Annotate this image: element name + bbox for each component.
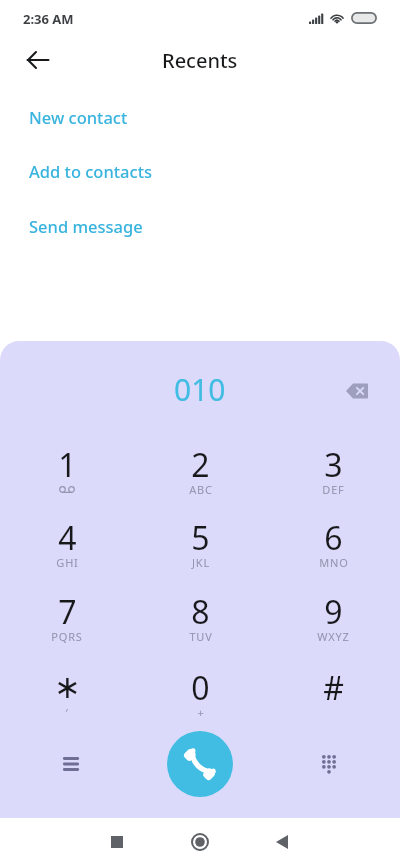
staticText: PQRS <box>51 629 83 644</box>
button[interactable]: 4 <box>0 503 134 577</box>
button[interactable]: Call <box>167 731 233 797</box>
staticText: 5 <box>191 516 210 560</box>
button[interactable]: 9 <box>267 577 400 651</box>
staticText: Send message <box>29 215 143 237</box>
staticText: 010 <box>174 369 226 410</box>
button[interactable]: Recents <box>97 822 137 862</box>
staticText: 3 <box>324 443 343 487</box>
button[interactable]: ∗ <box>0 653 134 727</box>
button[interactable]: 2 <box>134 430 267 504</box>
staticText: 2 <box>191 443 210 487</box>
button[interactable]: 7 <box>0 577 134 651</box>
staticText: 9 <box>324 590 343 634</box>
staticText: JKL <box>192 555 210 570</box>
staticText: 4 <box>58 516 77 560</box>
staticText: 7 <box>58 590 77 634</box>
button[interactable]: Add to contacts <box>0 144 400 198</box>
staticText: # <box>323 666 344 710</box>
button[interactable]: New contact <box>0 90 400 144</box>
staticText: 6 <box>324 516 343 560</box>
staticText: 1 <box>58 443 77 487</box>
button[interactable]: 1 <box>0 430 134 504</box>
staticText: 8 <box>191 590 210 634</box>
staticText: + <box>197 705 205 720</box>
staticText: MNO <box>319 555 349 570</box>
button[interactable]: Send message <box>0 199 400 253</box>
staticText: WXYZ <box>317 629 350 644</box>
button[interactable]: Backspace <box>337 371 377 411</box>
button[interactable]: Dial options <box>51 744 91 784</box>
staticText: New contact <box>29 106 128 128</box>
staticText: 2:36 AM <box>23 10 74 28</box>
staticText: DEF <box>322 482 345 497</box>
staticText: TUV <box>189 629 213 644</box>
button[interactable]: Home <box>180 822 220 862</box>
button[interactable]: 6 <box>267 503 400 577</box>
button[interactable]: 5 <box>134 503 267 577</box>
staticText: ′ <box>65 705 69 720</box>
staticText: ∗ <box>54 668 81 705</box>
button[interactable]: Back <box>18 40 58 80</box>
button[interactable]: Back <box>262 822 302 862</box>
staticText: GHI <box>56 555 79 570</box>
button[interactable]: 3 <box>267 430 400 504</box>
button[interactable]: Keypad <box>309 744 349 784</box>
button[interactable]: 8 <box>134 577 267 651</box>
staticText: Add to contacts <box>29 160 152 182</box>
button[interactable]: # <box>267 653 400 727</box>
staticText: ABC <box>189 482 213 497</box>
staticText: Recents <box>162 47 238 74</box>
button[interactable]: 0 <box>134 653 267 727</box>
staticText: 0 <box>191 666 210 710</box>
